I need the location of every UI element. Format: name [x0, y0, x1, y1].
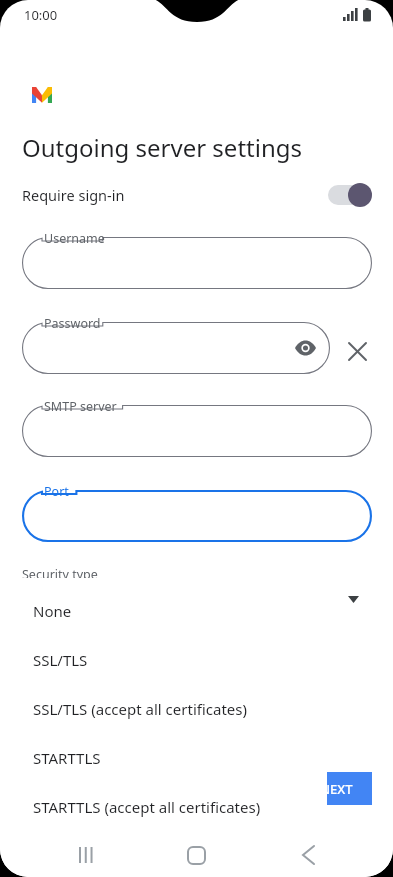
- staticText: Username: [44, 230, 105, 247]
- button[interactable]: Home: [160, 833, 232, 877]
- staticText: Port: [44, 483, 69, 500]
- button[interactable]: NEXT: [300, 772, 372, 805]
- staticText: STARTTLS (accept all certificates): [33, 797, 261, 817]
- staticText: SSL/TLS: [33, 650, 88, 670]
- staticText: Require sign-in: [22, 185, 125, 205]
- staticText: Security type: [22, 566, 98, 583]
- button[interactable]: Open security type dropdown: [337, 583, 369, 615]
- button[interactable]: Clear password: [340, 334, 374, 368]
- staticText: SSL/TLS (accept all certificates): [33, 699, 247, 719]
- button[interactable]: Username: [22, 237, 372, 289]
- staticText: Outgoing server settings: [22, 131, 303, 164]
- staticText: 10:00: [24, 6, 58, 24]
- staticText: NEXT: [320, 780, 353, 798]
- staticText: Password: [44, 315, 101, 332]
- button[interactable]: Port: [22, 490, 372, 542]
- staticText: None: [33, 601, 72, 621]
- button[interactable]: Recent apps: [50, 833, 122, 877]
- button[interactable]: Password: [22, 322, 330, 374]
- button[interactable]: Require sign-in: [0, 178, 393, 212]
- staticText: SMTP server: [44, 398, 117, 415]
- button[interactable]: STARTTLS: [15, 733, 327, 782]
- button[interactable]: STARTTLS (accept all certificates): [15, 782, 327, 831]
- button[interactable]: Back: [272, 833, 344, 877]
- staticText: STARTTLS: [33, 748, 101, 768]
- button[interactable]: SSL/TLS: [15, 635, 327, 684]
- button[interactable]: SSL/TLS (accept all certificates): [15, 684, 327, 733]
- button[interactable]: None: [15, 586, 327, 635]
- button[interactable]: Show password: [288, 331, 322, 365]
- button[interactable]: SMTP server: [22, 405, 372, 457]
